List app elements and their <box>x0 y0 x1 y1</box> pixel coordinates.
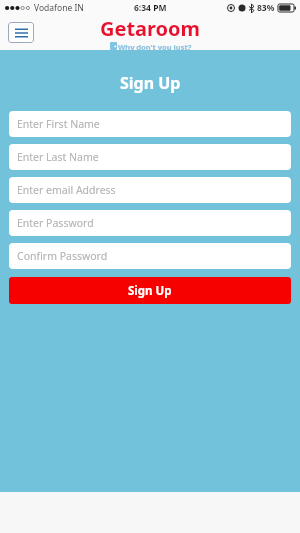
staticText: Enter Password <box>17 216 94 230</box>
staticText: Vodafone IN <box>34 2 84 14</box>
staticText: 83% <box>257 2 275 14</box>
staticText: Enter First Name <box>17 117 100 131</box>
button[interactable]: Enter First Name <box>9 111 291 137</box>
staticText: 6:34 PM <box>134 2 167 14</box>
button[interactable]: Enter Password <box>9 210 291 236</box>
staticText: Getaroom <box>100 15 201 42</box>
staticText: Sign Up <box>128 283 172 299</box>
staticText: Why don't you just? <box>118 42 192 50</box>
button[interactable]: Sign Up <box>9 277 291 304</box>
button[interactable]: Menu <box>8 22 34 43</box>
button[interactable]: Enter Last Name <box>9 144 291 170</box>
staticText: Enter email Address <box>17 183 116 197</box>
button[interactable]: Confirm Password <box>9 243 291 269</box>
button[interactable]: Enter email Address <box>9 177 291 203</box>
staticText: Confirm Password <box>17 249 108 263</box>
staticText: Enter Last Name <box>17 150 99 164</box>
staticText: Sign Up <box>120 72 181 94</box>
